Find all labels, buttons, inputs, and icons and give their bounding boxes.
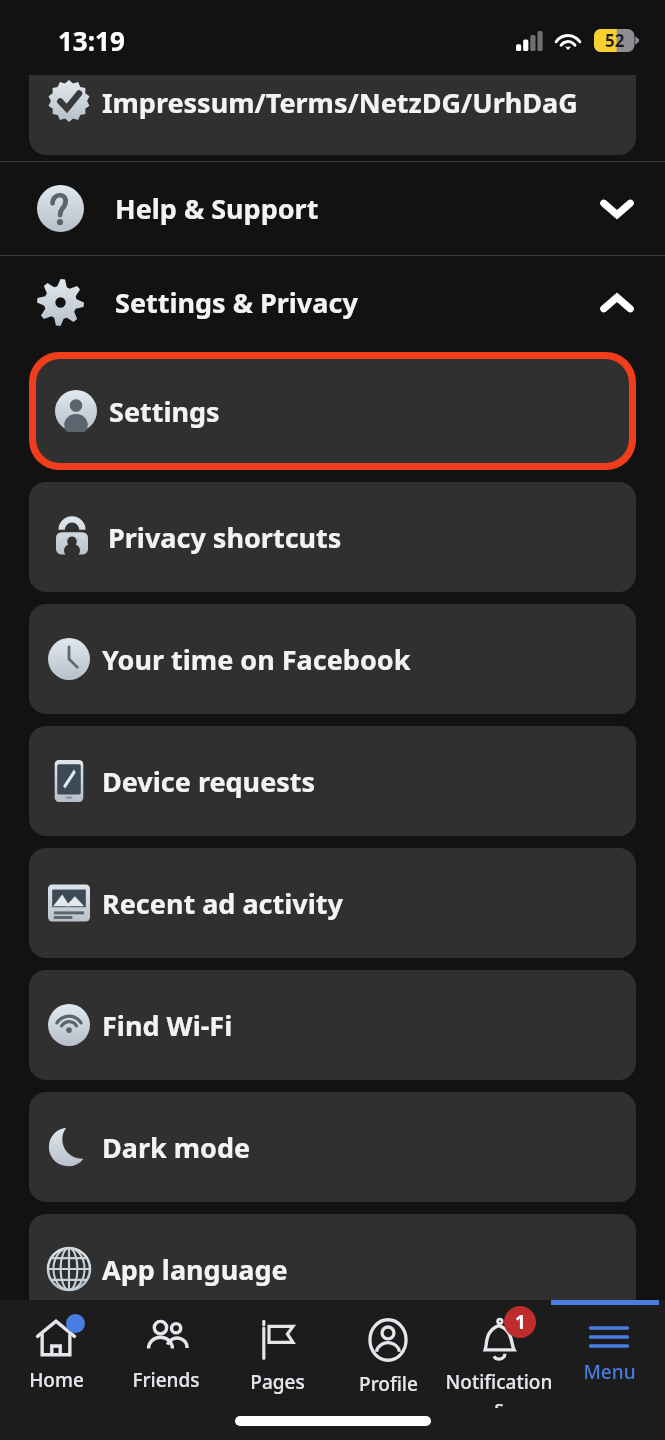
staticText: Dark mode [102,1129,251,1166]
staticText: Menu [583,1359,636,1385]
staticText: Home [29,1367,84,1393]
staticText: 52 [605,29,625,52]
button[interactable]: Friends [111,1300,221,1408]
button[interactable]: Impressum/Terms/NetzDG/UrhDaG [29,75,636,155]
staticText: Notifications [444,1369,554,1408]
button[interactable]: Home [1,1300,111,1408]
button[interactable]: Your time on Facebook [29,604,636,714]
staticText: Privacy shortcuts [108,519,342,556]
button[interactable]: Settings & Privacy [0,256,665,349]
button[interactable]: Find Wi-Fi [29,970,636,1080]
button[interactable]: Device requests [29,726,636,836]
staticText: Help & Support [115,190,319,227]
staticText: Settings [109,393,220,430]
button[interactable]: Notifications [444,1300,554,1408]
staticText: Device requests [102,763,316,800]
staticText: Recent ad activity [102,885,343,922]
staticText: Pages [250,1369,305,1395]
staticText: Impressum/Terms/NetzDG/UrhDaG [102,84,578,121]
button[interactable]: Menu [554,1300,664,1408]
button[interactable]: Recent ad activity [29,848,636,958]
staticText: Friends [132,1367,200,1393]
staticText: Find Wi-Fi [102,1007,233,1044]
button[interactable]: Profile [333,1300,443,1408]
staticText: Your time on Facebook [102,641,411,678]
staticText: Settings & Privacy [115,284,358,321]
button[interactable]: Dark mode [29,1092,636,1202]
button[interactable]: Pages [222,1300,332,1408]
button[interactable]: App language [29,1214,636,1324]
button[interactable]: Settings [36,359,629,463]
staticText: 1 [515,1309,526,1335]
staticText: Profile [359,1371,418,1397]
button[interactable]: Privacy shortcuts [29,482,636,592]
staticText: 13:19 [58,23,125,58]
button[interactable]: Help & Support [0,162,665,255]
staticText: App language [102,1251,288,1288]
